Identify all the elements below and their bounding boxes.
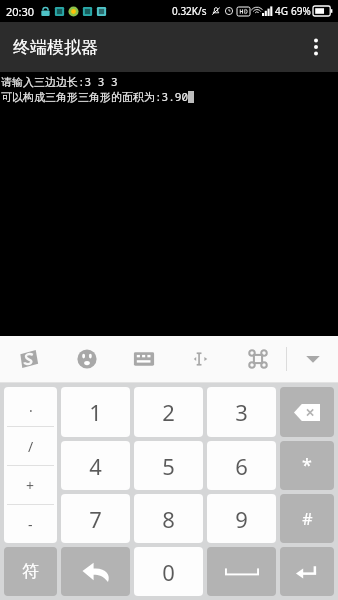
staticText: 符 bbox=[22, 561, 39, 582]
button[interactable]: 7 bbox=[61, 494, 130, 543]
button[interactable]: Enter bbox=[280, 547, 334, 596]
staticText: 可以构成三角形三角形的面积为:3.90 bbox=[1, 89, 188, 104]
button[interactable]: 1 bbox=[61, 387, 130, 437]
button[interactable]: + bbox=[4, 466, 57, 504]
staticText: 0 bbox=[162, 557, 175, 587]
staticText: + bbox=[26, 476, 35, 495]
staticText: # bbox=[302, 508, 313, 530]
staticText: 69% bbox=[291, 4, 311, 18]
button[interactable]: 8 bbox=[134, 494, 203, 543]
staticText: 8 bbox=[162, 504, 175, 534]
staticText: 6 bbox=[235, 451, 248, 481]
button[interactable]: 符 bbox=[4, 547, 57, 596]
staticText: 4G bbox=[275, 4, 288, 18]
button[interactable]: Cursor move bbox=[172, 336, 229, 382]
button[interactable]: 2 bbox=[134, 387, 203, 437]
staticText: 1 bbox=[89, 397, 102, 427]
button[interactable]: More options bbox=[294, 25, 338, 69]
button[interactable]: . bbox=[4, 387, 57, 426]
button[interactable]: Shortcuts bbox=[229, 336, 286, 382]
button[interactable]: Backspace arrow bbox=[61, 547, 130, 596]
staticText: 5 bbox=[162, 451, 175, 481]
button[interactable]: Space bbox=[207, 547, 276, 596]
button[interactable]: * bbox=[280, 441, 334, 490]
button[interactable]: 0 bbox=[134, 547, 203, 596]
staticText: 3 bbox=[235, 397, 248, 427]
button[interactable]: 9 bbox=[207, 494, 276, 543]
staticText: 2 bbox=[162, 397, 175, 427]
staticText: * bbox=[302, 453, 312, 478]
staticText: / bbox=[28, 437, 34, 456]
button[interactable]: Delete bbox=[280, 387, 334, 437]
button[interactable]: 5 bbox=[134, 441, 203, 490]
button[interactable]: / bbox=[4, 427, 57, 465]
staticText: 0.32K/s bbox=[172, 4, 207, 18]
button[interactable]: Emoji bbox=[58, 336, 115, 382]
staticText: 请输入三边边长:3 3 3 bbox=[1, 74, 118, 89]
button[interactable]: - bbox=[4, 505, 57, 543]
staticText: 9 bbox=[235, 504, 248, 534]
button[interactable]: Keyboard layout bbox=[115, 336, 172, 382]
staticText: . bbox=[29, 397, 33, 416]
button[interactable]: Hide keyboard bbox=[287, 336, 338, 382]
staticText: 终端模拟器 bbox=[13, 37, 98, 58]
button[interactable]: 6 bbox=[207, 441, 276, 490]
staticText: 4 bbox=[89, 451, 102, 481]
button[interactable]: # bbox=[280, 494, 334, 543]
button[interactable]: 3 bbox=[207, 387, 276, 437]
button[interactable]: 4 bbox=[61, 441, 130, 490]
staticText: 7 bbox=[89, 504, 102, 534]
button[interactable]: Sogou input bbox=[0, 336, 58, 382]
staticText: 20:30 bbox=[6, 4, 35, 19]
staticText: - bbox=[28, 515, 33, 534]
